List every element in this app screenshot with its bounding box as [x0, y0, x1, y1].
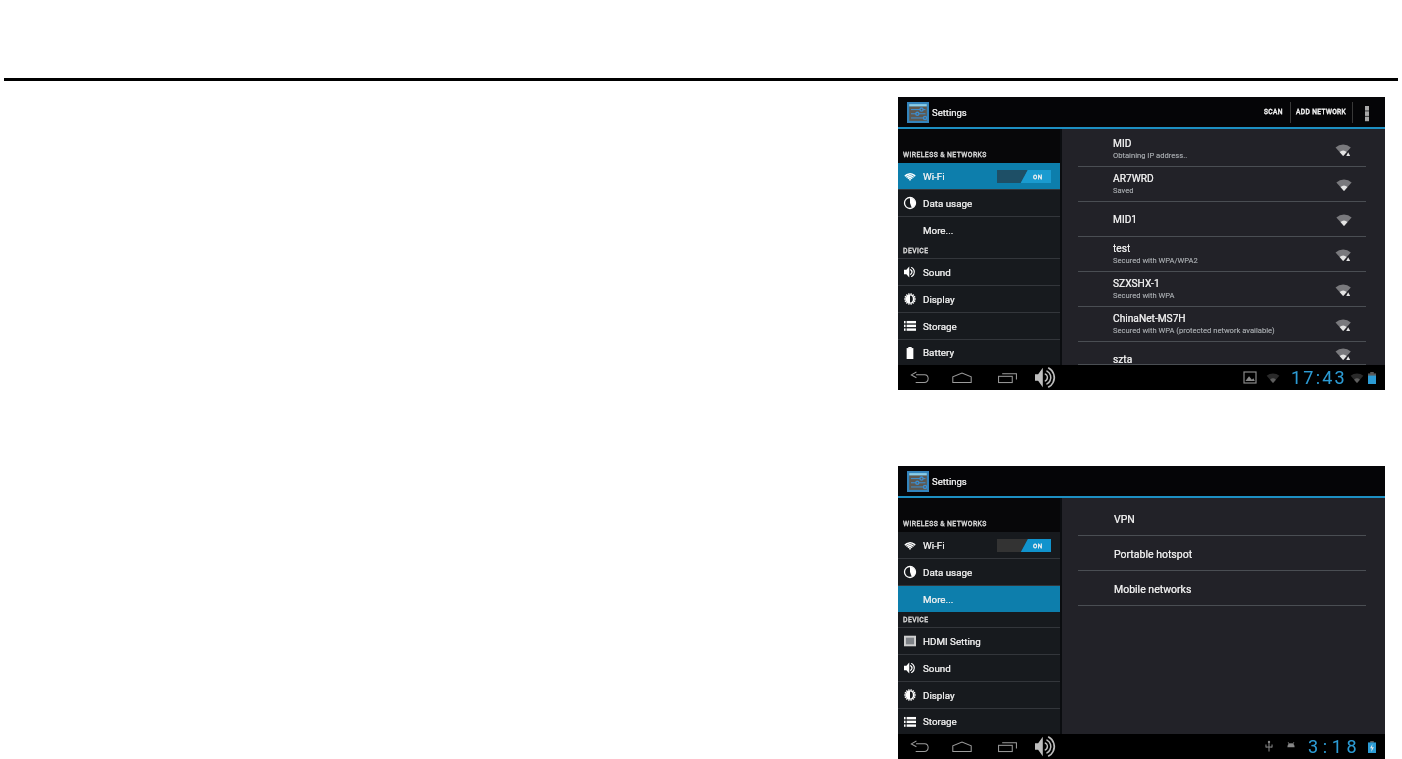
staticText: ADD NETWORK: [1296, 108, 1347, 116]
button[interactable]: test: [1062, 237, 1385, 272]
button[interactable]: szta: [1062, 342, 1385, 365]
staticText: MID1: [1113, 214, 1138, 226]
button[interactable]: Back: [907, 365, 932, 390]
button[interactable]: Data usage: [898, 559, 1060, 585]
staticText: Obtaining IP address..: [1113, 151, 1188, 160]
staticText: ON: [1033, 173, 1043, 180]
button[interactable]: Volume: [1034, 734, 1061, 759]
staticText: AR7WRD: [1113, 173, 1154, 185]
staticText: VPN: [1114, 513, 1135, 525]
staticText: WIRELESS & NETWORKS: [903, 520, 987, 528]
button[interactable]: Home: [949, 734, 974, 759]
button[interactable]: HDMI Setting: [898, 628, 1060, 654]
button[interactable]: SCAN: [1257, 97, 1290, 127]
button[interactable]: AR7WRD: [1062, 167, 1385, 202]
button[interactable]: Volume: [1034, 365, 1061, 390]
button[interactable]: Wi-Fi: [898, 532, 1060, 558]
button[interactable]: Display: [898, 682, 1060, 708]
button[interactable]: Home: [949, 365, 974, 390]
button[interactable]: More...: [898, 217, 1060, 243]
button[interactable]: ChinaNet-MS7H: [1062, 307, 1385, 342]
button[interactable]: Wi-Fi: [898, 163, 1060, 189]
button[interactable]: Display: [898, 286, 1060, 312]
button[interactable]: Mobile networks: [1062, 571, 1385, 606]
staticText: 3:18: [1308, 736, 1362, 757]
staticText: SCAN: [1264, 108, 1283, 116]
button[interactable]: VPN: [1062, 501, 1385, 536]
button[interactable]: Sound: [898, 655, 1060, 681]
button[interactable]: Battery: [898, 340, 1060, 365]
staticText: WIRELESS & NETWORKS: [903, 151, 987, 159]
button[interactable]: Wi-Fi on/off: [997, 539, 1051, 552]
staticText: Battery: [923, 347, 955, 358]
staticText: szta: [1113, 354, 1133, 366]
staticText: Mobile networks: [1114, 583, 1192, 595]
button[interactable]: Portable hotspot: [1062, 536, 1385, 571]
staticText: DEVICE: [903, 616, 929, 624]
staticText: Sound: [923, 267, 951, 278]
staticText: Storage: [923, 321, 957, 332]
button[interactable]: Storage: [898, 709, 1060, 734]
staticText: Sound: [923, 663, 951, 674]
staticText: ON: [1033, 542, 1043, 549]
staticText: Storage: [923, 716, 957, 727]
staticText: Secured with WPA/WPA2: [1113, 256, 1198, 265]
staticText: Wi-Fi: [923, 171, 945, 182]
staticText: More...: [923, 594, 954, 605]
staticText: Secured with WPA: [1113, 291, 1175, 300]
staticText: Data usage: [923, 198, 973, 209]
staticText: Saved: [1113, 186, 1134, 195]
staticText: MID: [1113, 138, 1132, 150]
staticText: Display: [923, 294, 955, 305]
staticText: DEVICE: [903, 247, 929, 255]
button[interactable]: MID1: [1062, 202, 1385, 237]
button[interactable]: Sound: [898, 259, 1060, 285]
staticText: Wi-Fi: [923, 540, 945, 551]
button[interactable]: Back: [907, 734, 932, 759]
staticText: Secured with WPA (protected network avai…: [1113, 326, 1275, 335]
button[interactable]: SZXSHX-1: [1062, 272, 1385, 307]
staticText: Display: [923, 690, 955, 701]
button[interactable]: Storage: [898, 313, 1060, 339]
button[interactable]: More...: [898, 586, 1060, 612]
staticText: ChinaNet-MS7H: [1113, 313, 1186, 325]
button[interactable]: MID: [1062, 132, 1385, 167]
staticText: SZXSHX-1: [1113, 278, 1160, 290]
button[interactable]: ADD NETWORK: [1291, 97, 1352, 127]
staticText: test: [1113, 243, 1131, 255]
button[interactable]: Wi-Fi on/off: [997, 170, 1051, 183]
button[interactable]: More options: [1353, 97, 1380, 127]
button[interactable]: Data usage: [898, 190, 1060, 216]
staticText: Portable hotspot: [1114, 548, 1193, 560]
staticText: Data usage: [923, 567, 973, 578]
button[interactable]: Recent apps: [995, 365, 1020, 390]
staticText: Settings: [932, 476, 967, 487]
staticText: 17:43: [1291, 367, 1347, 388]
button[interactable]: Recent apps: [995, 734, 1020, 759]
staticText: HDMI Setting: [923, 636, 981, 647]
staticText: Settings: [932, 107, 967, 118]
staticText: More...: [923, 225, 954, 236]
